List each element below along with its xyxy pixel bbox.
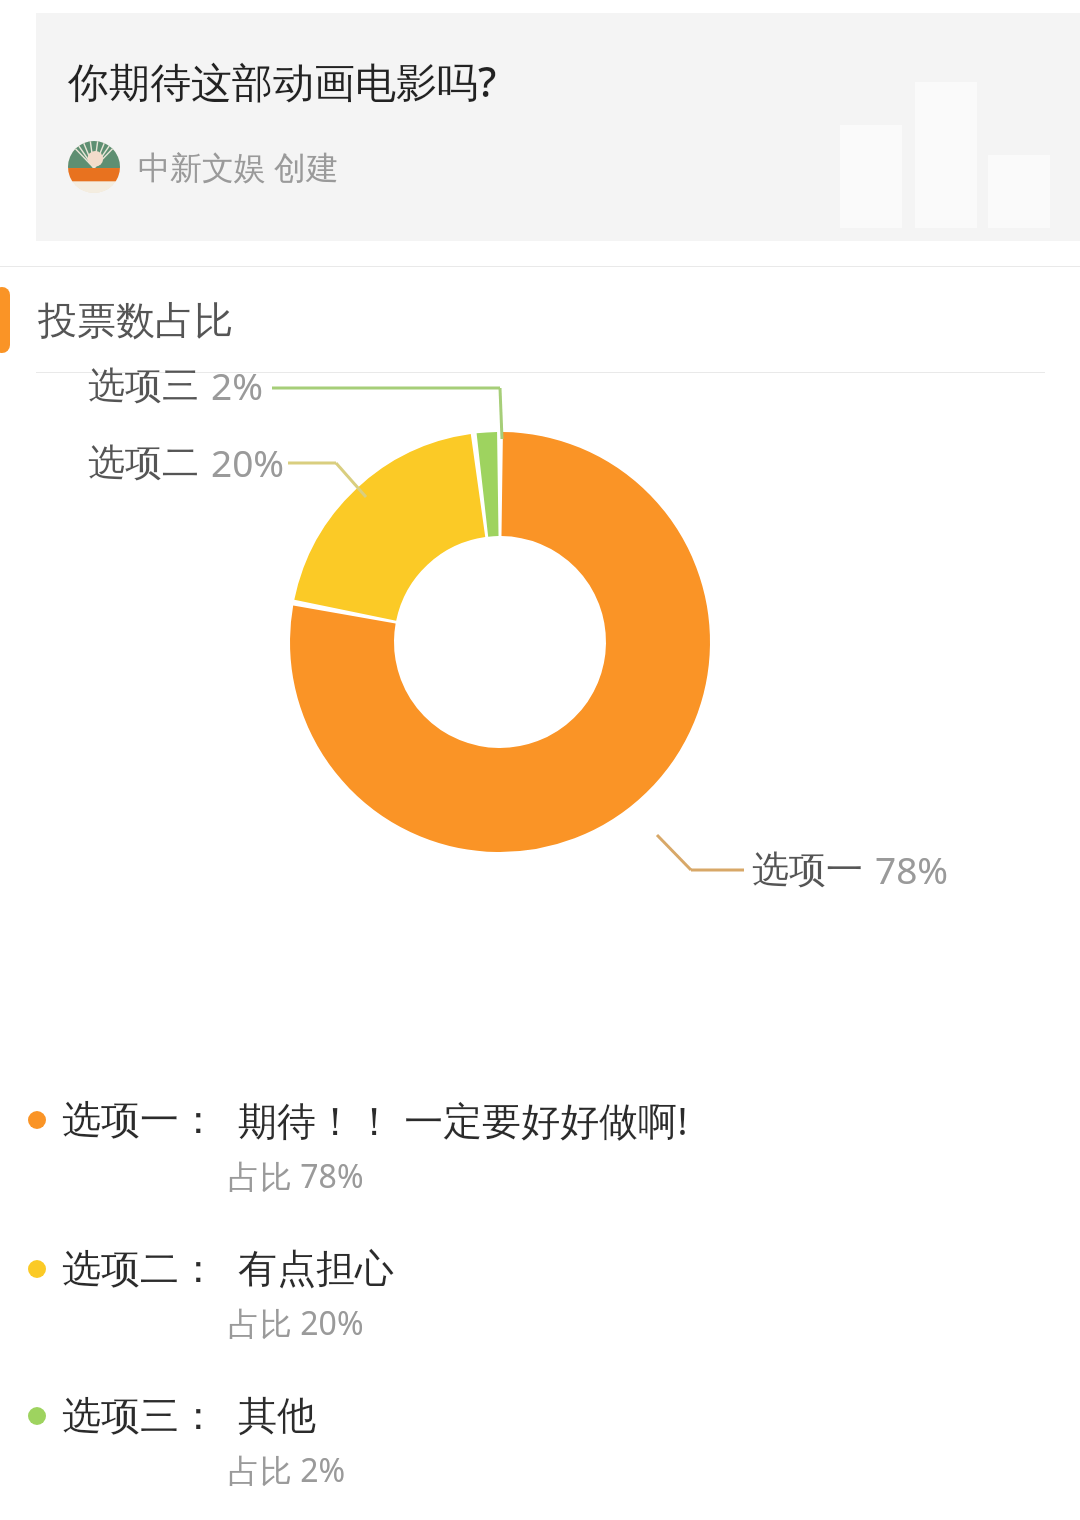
staticText: 选项三： bbox=[62, 1391, 218, 1440]
staticText: 选项二 bbox=[88, 439, 199, 486]
staticText: 中新文娱 创建 bbox=[138, 145, 339, 189]
other: 中新文娱 头像 bbox=[68, 141, 120, 193]
staticText: 其他 bbox=[238, 1391, 316, 1440]
staticText: 选项一： bbox=[62, 1095, 218, 1144]
staticText: 占比 20% bbox=[228, 1301, 364, 1345]
staticText: 选项一 bbox=[752, 846, 863, 893]
staticText: 有点担心 bbox=[238, 1244, 394, 1293]
button[interactable]: 选项二： bbox=[0, 1244, 1080, 1345]
button[interactable]: 选项一： bbox=[0, 1093, 1080, 1198]
button[interactable]: 选项三： bbox=[0, 1391, 1080, 1492]
staticText: 选项二： bbox=[62, 1244, 218, 1293]
staticText: 占比 2% bbox=[228, 1448, 346, 1492]
button[interactable]: 你期待这部动画电影吗? bbox=[36, 13, 1080, 241]
staticText: 期待！！ 一定要好好做啊! bbox=[238, 1093, 688, 1146]
staticText: 78% bbox=[875, 844, 949, 894]
staticText: 投票数占比 bbox=[38, 296, 233, 345]
staticText: 占比 78% bbox=[228, 1154, 364, 1198]
staticText: 20% bbox=[211, 437, 285, 487]
staticText: 你期待这部动画电影吗? bbox=[68, 53, 497, 109]
staticText: 选项三 bbox=[88, 362, 199, 409]
staticText: 2% bbox=[211, 360, 263, 410]
